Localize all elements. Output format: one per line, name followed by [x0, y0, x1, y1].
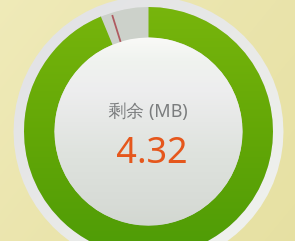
- staticText: 4.32: [116, 125, 188, 174]
- button[interactable]: Remaining data gauge: [0, 0, 295, 241]
- staticText: 剩余 (MB): [108, 98, 188, 123]
